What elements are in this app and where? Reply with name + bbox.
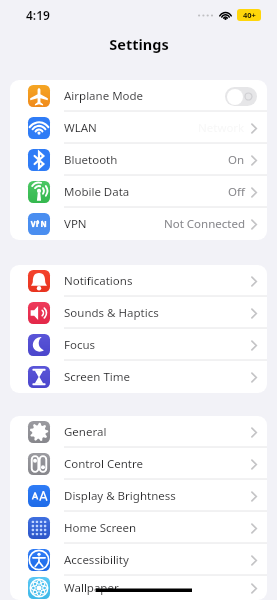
button[interactable]: [225, 87, 257, 106]
other: Open: [251, 276, 257, 287]
staticText: Sounds & Haptics: [64, 305, 159, 321]
staticText: Accessibility: [64, 552, 129, 568]
button[interactable]: Home Screen: [10, 512, 267, 544]
button[interactable]: Focus: [10, 329, 267, 361]
button[interactable]: Accessibility: [10, 544, 267, 576]
staticText: Control Centre: [64, 456, 143, 472]
other: Open: [251, 427, 257, 438]
other: Open: [251, 308, 257, 319]
staticText: 4:19: [26, 7, 50, 23]
other: Open: [251, 555, 257, 566]
staticText: 40+: [243, 10, 256, 20]
other: Open: [251, 583, 257, 594]
button[interactable]: Control Centre: [10, 448, 267, 480]
other: Open: [251, 123, 257, 134]
other: Open: [251, 219, 257, 230]
staticText: Focus: [64, 337, 96, 353]
other: Open: [251, 372, 257, 383]
staticText: Display & Brightness: [64, 488, 176, 504]
other: Open: [251, 187, 257, 198]
button[interactable]: Bluetooth: [10, 144, 267, 176]
other: Open: [251, 155, 257, 166]
staticText: Bluetooth: [64, 152, 118, 168]
other: Open: [251, 523, 257, 534]
button[interactable]: Wallpaper: [10, 576, 267, 600]
other: Open: [251, 459, 257, 470]
staticText: Mobile Data: [64, 184, 130, 200]
button[interactable]: Airplane Mode: [10, 80, 267, 112]
staticText: Notifications: [64, 273, 133, 289]
button[interactable]: Sounds & Haptics: [10, 297, 267, 329]
staticText: On: [228, 152, 245, 168]
button[interactable]: Screen Time: [10, 361, 267, 393]
staticText: WLAN: [64, 120, 97, 136]
staticText: Home Screen: [64, 520, 137, 536]
staticText: General: [64, 424, 107, 440]
staticText: Off: [228, 184, 245, 200]
other: Open: [251, 340, 257, 351]
staticText: Airplane Mode: [64, 88, 144, 104]
button[interactable]: Notifications: [10, 265, 267, 297]
button[interactable]: WLAN: [10, 112, 267, 144]
staticText: Not Connected: [164, 216, 245, 232]
other: Open: [251, 491, 257, 502]
button[interactable]: Mobile Data: [10, 176, 267, 208]
button[interactable]: General: [10, 416, 267, 448]
button[interactable]: Display & Brightness: [10, 480, 267, 512]
staticText: Settings: [109, 34, 169, 54]
staticText: Wallpaper: [64, 580, 119, 596]
staticText: VPN: [64, 216, 87, 232]
button[interactable]: VPN: [10, 208, 267, 240]
staticText: Screen Time: [64, 369, 131, 385]
